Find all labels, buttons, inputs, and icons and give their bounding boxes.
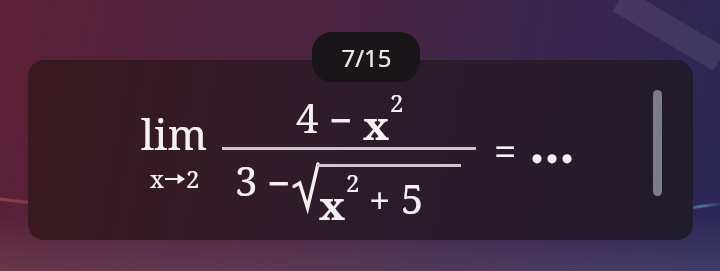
staticText: x (150, 162, 164, 195)
staticText: 4 (296, 90, 319, 144)
staticText: − (329, 92, 353, 146)
staticText: 2 (186, 162, 200, 195)
staticText: lim (141, 105, 208, 162)
staticText: x (363, 97, 389, 151)
staticText: 3 (235, 153, 258, 207)
button[interactable]: lim (28, 60, 693, 240)
staticText: 2 (346, 166, 360, 199)
button[interactable]: Question 7 of 15 (312, 32, 420, 82)
staticText: = (494, 123, 517, 177)
staticText: x (319, 177, 345, 231)
staticText: − (267, 155, 291, 209)
staticText: 5 (401, 171, 424, 225)
staticText: 2 (390, 86, 404, 119)
staticText: + (369, 174, 391, 226)
staticText: 7/15 (341, 41, 392, 74)
